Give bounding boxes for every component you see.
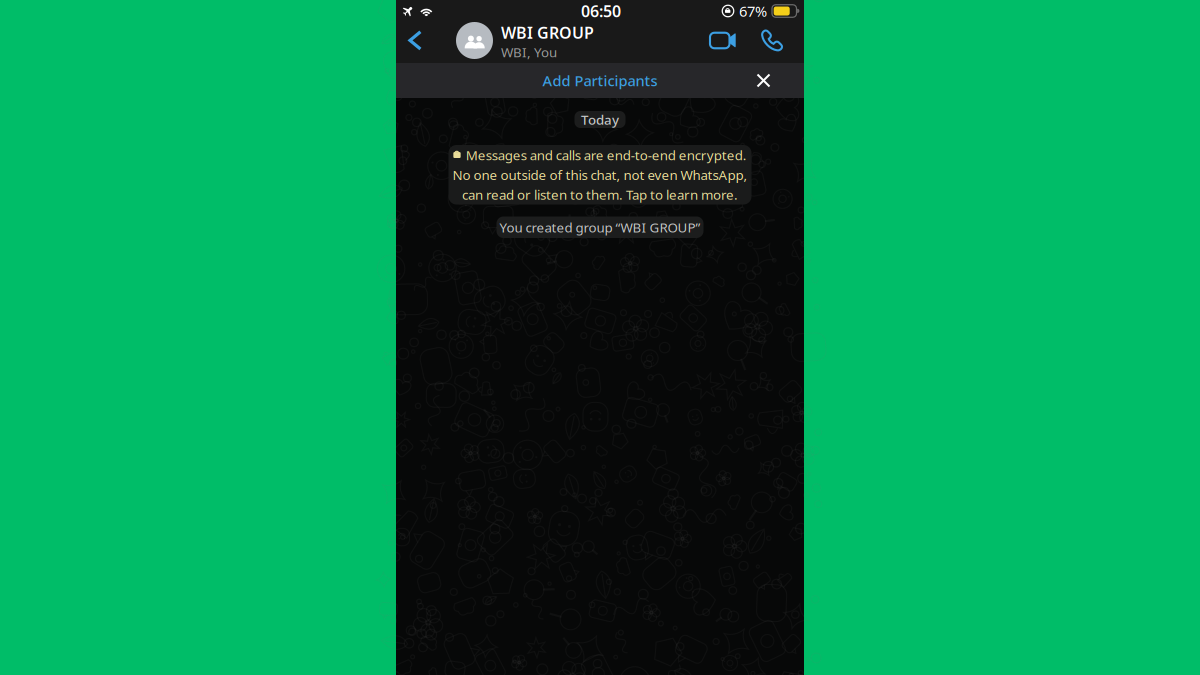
staticText: 06:50: [581, 0, 621, 22]
staticText: 67%: [739, 1, 767, 21]
button[interactable]: Back: [408, 18, 442, 62]
staticText: WBI, You: [501, 43, 557, 61]
staticText: Today: [581, 111, 619, 128]
button[interactable]: Voice call: [761, 18, 783, 62]
button[interactable]: Dismiss: [746, 63, 781, 98]
button[interactable]: Messages and calls are end-to-end encryp…: [448, 145, 751, 204]
button[interactable]: Add Participants: [396, 63, 804, 98]
button[interactable]: WBI GROUP: [456, 20, 594, 61]
staticText: Messages and calls are end-to-end encryp…: [466, 146, 747, 164]
staticText: No one outside of this chat, not even Wh…: [452, 166, 747, 184]
staticText: Add Participants: [542, 71, 657, 90]
staticText: You created group “WBI GROUP”: [499, 218, 700, 236]
staticText: can read or listen to them. Tap to learn…: [462, 186, 738, 203]
button[interactable]: Video call: [711, 18, 736, 62]
staticText: WBI GROUP: [501, 22, 594, 43]
